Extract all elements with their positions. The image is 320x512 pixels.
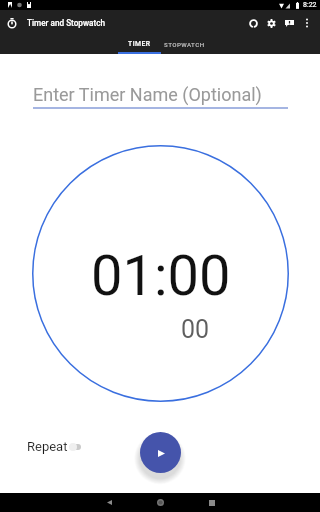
staticText: 01:00 [91,243,231,309]
button[interactable]: More options [298,14,316,32]
button[interactable]: Saved timers [244,14,262,32]
button[interactable]: Back [84,493,135,512]
staticText: Enter Timer Name (Optional) [33,84,262,105]
button[interactable]: Feedback [280,14,298,32]
button[interactable]: Settings [262,14,280,32]
staticText: TIMER [128,40,151,48]
button[interactable]: Start timer [140,432,181,473]
staticText: 8:22 [303,1,317,9]
button[interactable]: Recent apps [186,493,237,512]
button[interactable]: Home [135,493,186,512]
button[interactable]: TIMER [118,36,161,54]
staticText: Timer and Stopwatch [27,18,106,28]
button[interactable]: Navigate up [0,11,24,35]
button[interactable]: STOPWATCH [166,36,209,54]
button[interactable]: Repeat [27,437,81,456]
staticText: Repeat [27,439,68,454]
staticText: STOPWATCH [164,41,205,48]
staticText: 00 [181,315,210,344]
